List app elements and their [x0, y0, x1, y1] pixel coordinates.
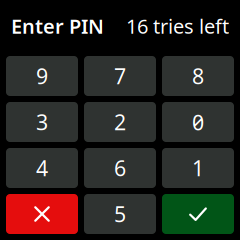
staticText: 16 tries left — [126, 13, 229, 39]
staticText: 4 — [36, 154, 48, 182]
staticText: 2 — [114, 108, 126, 136]
staticText: 9 — [36, 62, 48, 90]
staticText: 0 — [192, 108, 204, 136]
staticText: 7 — [114, 62, 126, 90]
staticText: Enter PIN — [11, 13, 104, 39]
button[interactable]: 2 — [84, 102, 156, 142]
button[interactable]: 7 — [84, 56, 156, 96]
button[interactable]: 4 — [6, 148, 78, 188]
staticText: 1 — [192, 154, 204, 182]
staticText: 6 — [114, 154, 126, 182]
button[interactable]: 3 — [6, 102, 78, 142]
button[interactable]: Cancel — [6, 194, 78, 234]
button[interactable]: 0 — [162, 102, 234, 142]
button[interactable]: 5 — [84, 194, 156, 234]
button[interactable]: 8 — [162, 56, 234, 96]
staticText: 5 — [114, 200, 126, 228]
staticText: 3 — [36, 108, 48, 136]
staticText: 8 — [192, 62, 204, 90]
button[interactable]: Confirm — [162, 194, 234, 234]
button[interactable]: 6 — [84, 148, 156, 188]
button[interactable]: 1 — [162, 148, 234, 188]
button[interactable]: 9 — [6, 56, 78, 96]
